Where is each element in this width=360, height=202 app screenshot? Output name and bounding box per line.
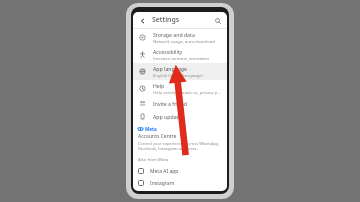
staticText: English (device language)	[153, 73, 203, 79]
button[interactable]: Meta AI app	[133, 165, 227, 177]
staticText: Help	[153, 82, 165, 89]
staticText: Meta AI app	[150, 168, 179, 175]
staticText: Also from Meta	[138, 157, 169, 163]
staticText: Meta	[145, 126, 157, 132]
staticText: Network usage, auto-download	[153, 39, 215, 45]
button[interactable]: Accessibility	[133, 46, 227, 63]
staticText: Settings	[152, 15, 180, 25]
button[interactable]: Storage and data	[133, 29, 227, 46]
staticText: Instagram	[150, 180, 175, 187]
staticText: Facebook, Instagram and more.	[138, 146, 198, 151]
staticText: Accessibility	[153, 48, 183, 55]
staticText: App updates	[153, 113, 184, 120]
staticText: Accounts Centre	[138, 133, 177, 140]
button[interactable]: Back	[137, 15, 148, 26]
staticText: Invite a friend	[153, 100, 187, 107]
button[interactable]: Meta	[133, 125, 227, 153]
button[interactable]: App updates	[133, 110, 227, 123]
button[interactable]: Help	[133, 80, 227, 97]
staticText: App language	[153, 65, 187, 72]
staticText: Help center, contact us, privacy policy	[153, 90, 223, 96]
button[interactable]: App language	[133, 63, 227, 80]
staticText: Storage and data	[153, 31, 195, 38]
staticText: Control your experiences across WhatsApp…	[138, 141, 220, 146]
staticText: Increase contrast, animation	[153, 56, 210, 62]
button[interactable]: Invite a friend	[133, 97, 227, 110]
button[interactable]: Search	[212, 15, 223, 26]
button[interactable]: Instagram	[133, 177, 227, 189]
